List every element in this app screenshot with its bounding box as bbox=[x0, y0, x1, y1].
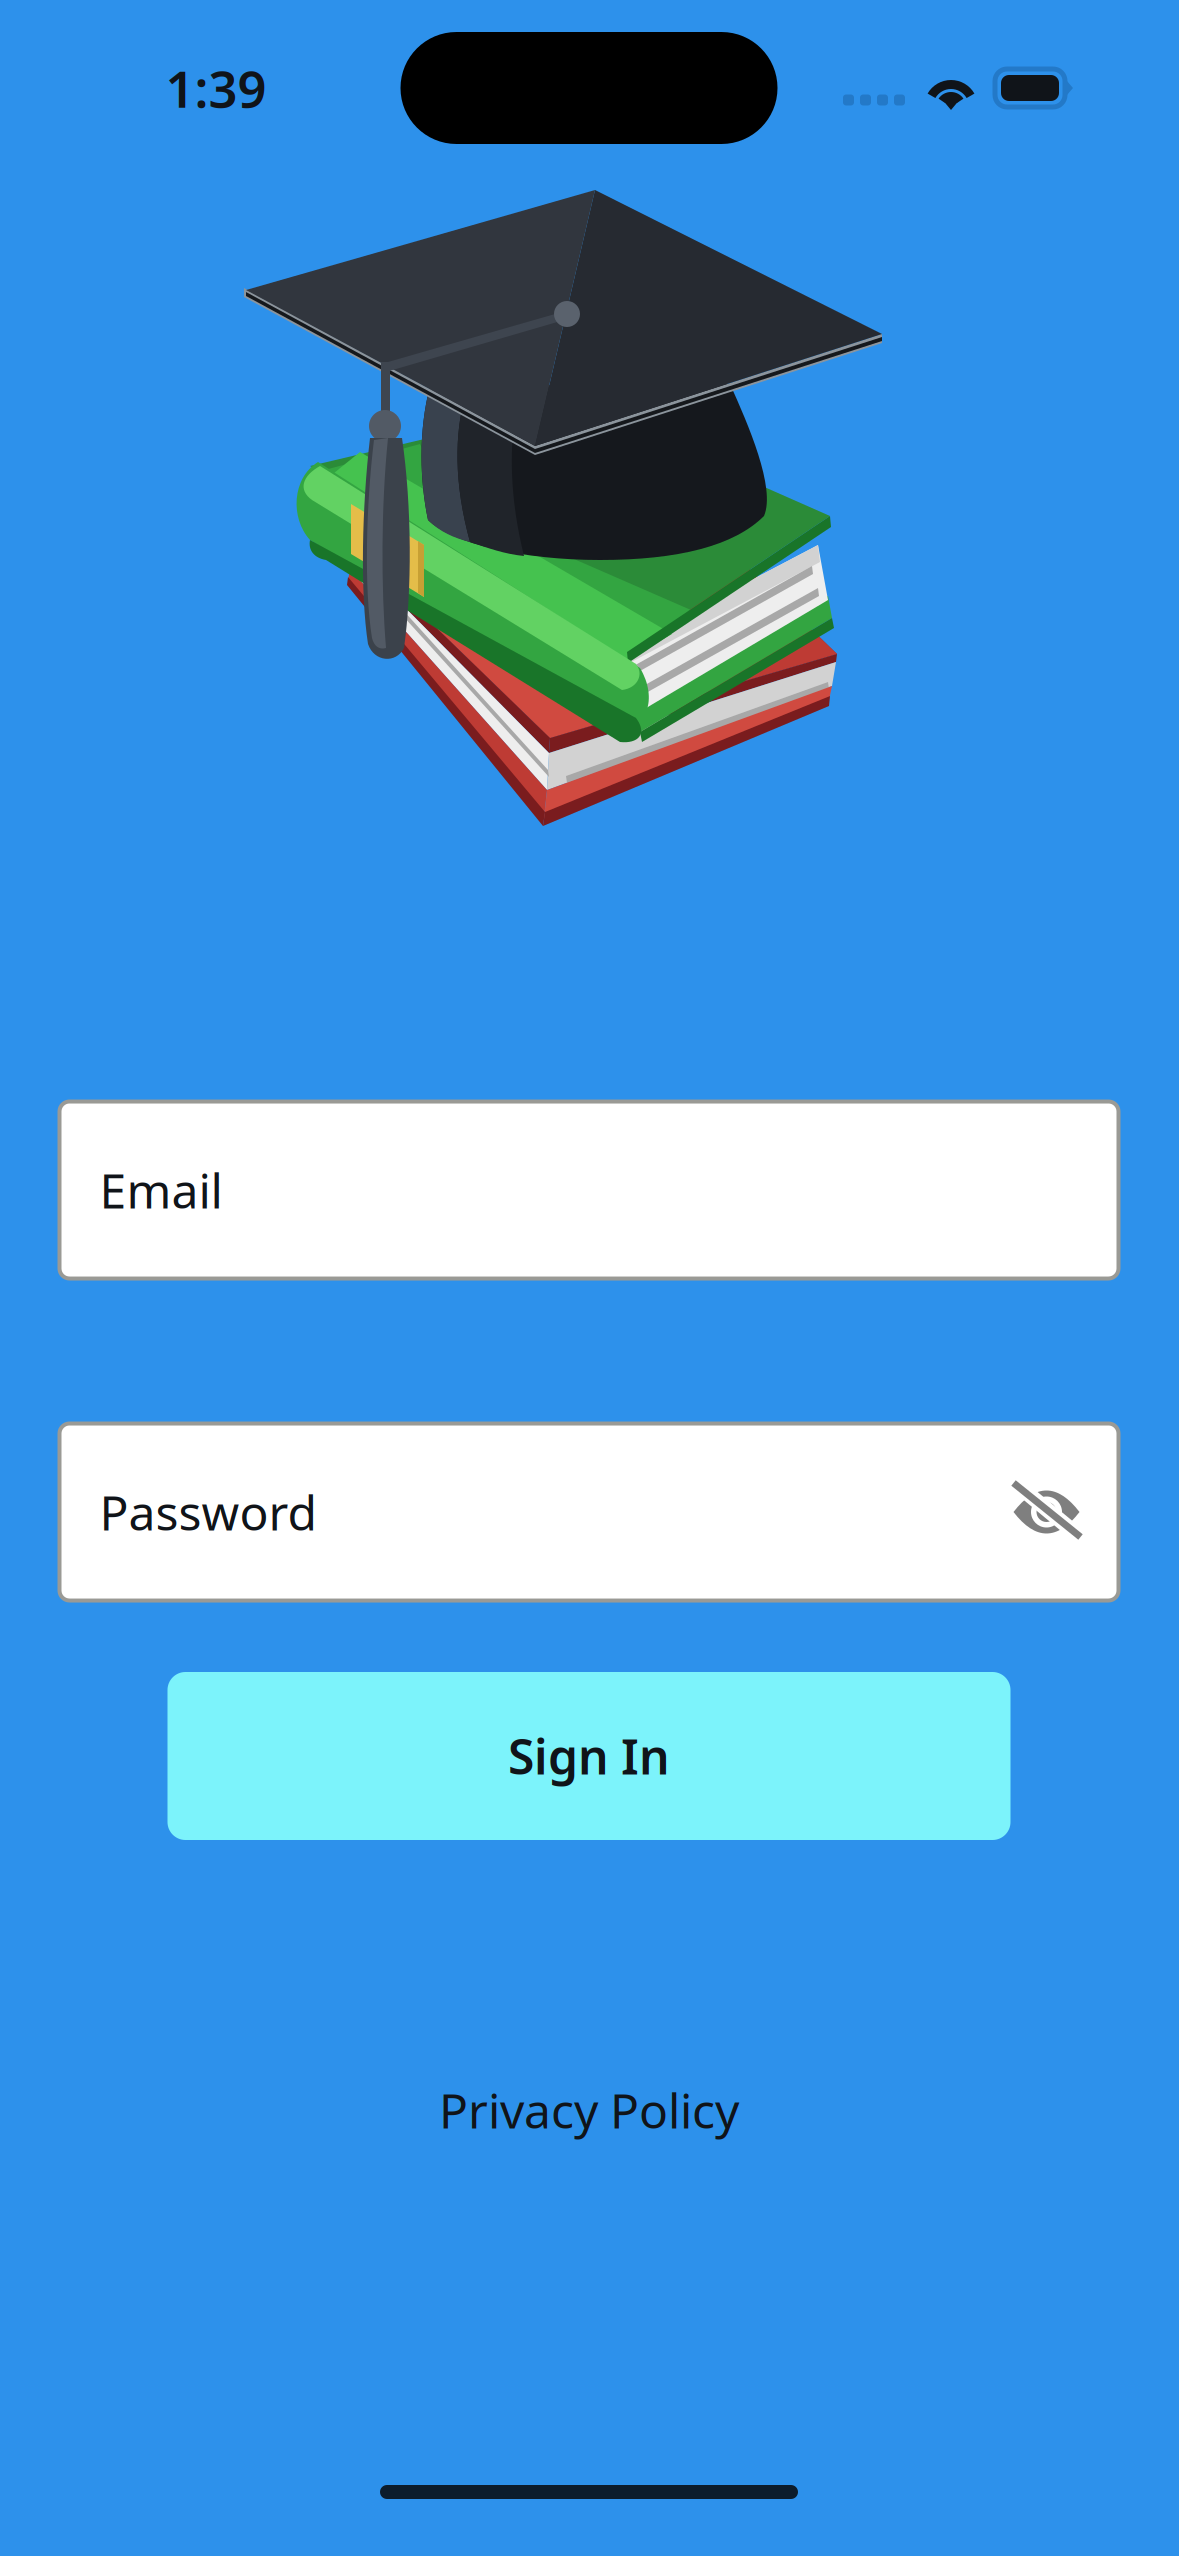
button[interactable]: Email bbox=[59, 1101, 1118, 1278]
button[interactable]: Password bbox=[59, 1423, 1118, 1600]
staticText: Privacy Policy bbox=[439, 2078, 739, 2142]
button[interactable]: Privacy Policy bbox=[425, 2064, 753, 2156]
button[interactable]: Sign In bbox=[167, 1672, 1010, 1840]
staticText: Email bbox=[99, 1158, 222, 1222]
staticText: Password bbox=[99, 1480, 317, 1544]
staticText: Sign In bbox=[508, 1724, 670, 1788]
staticText: 1:39 bbox=[165, 54, 266, 122]
